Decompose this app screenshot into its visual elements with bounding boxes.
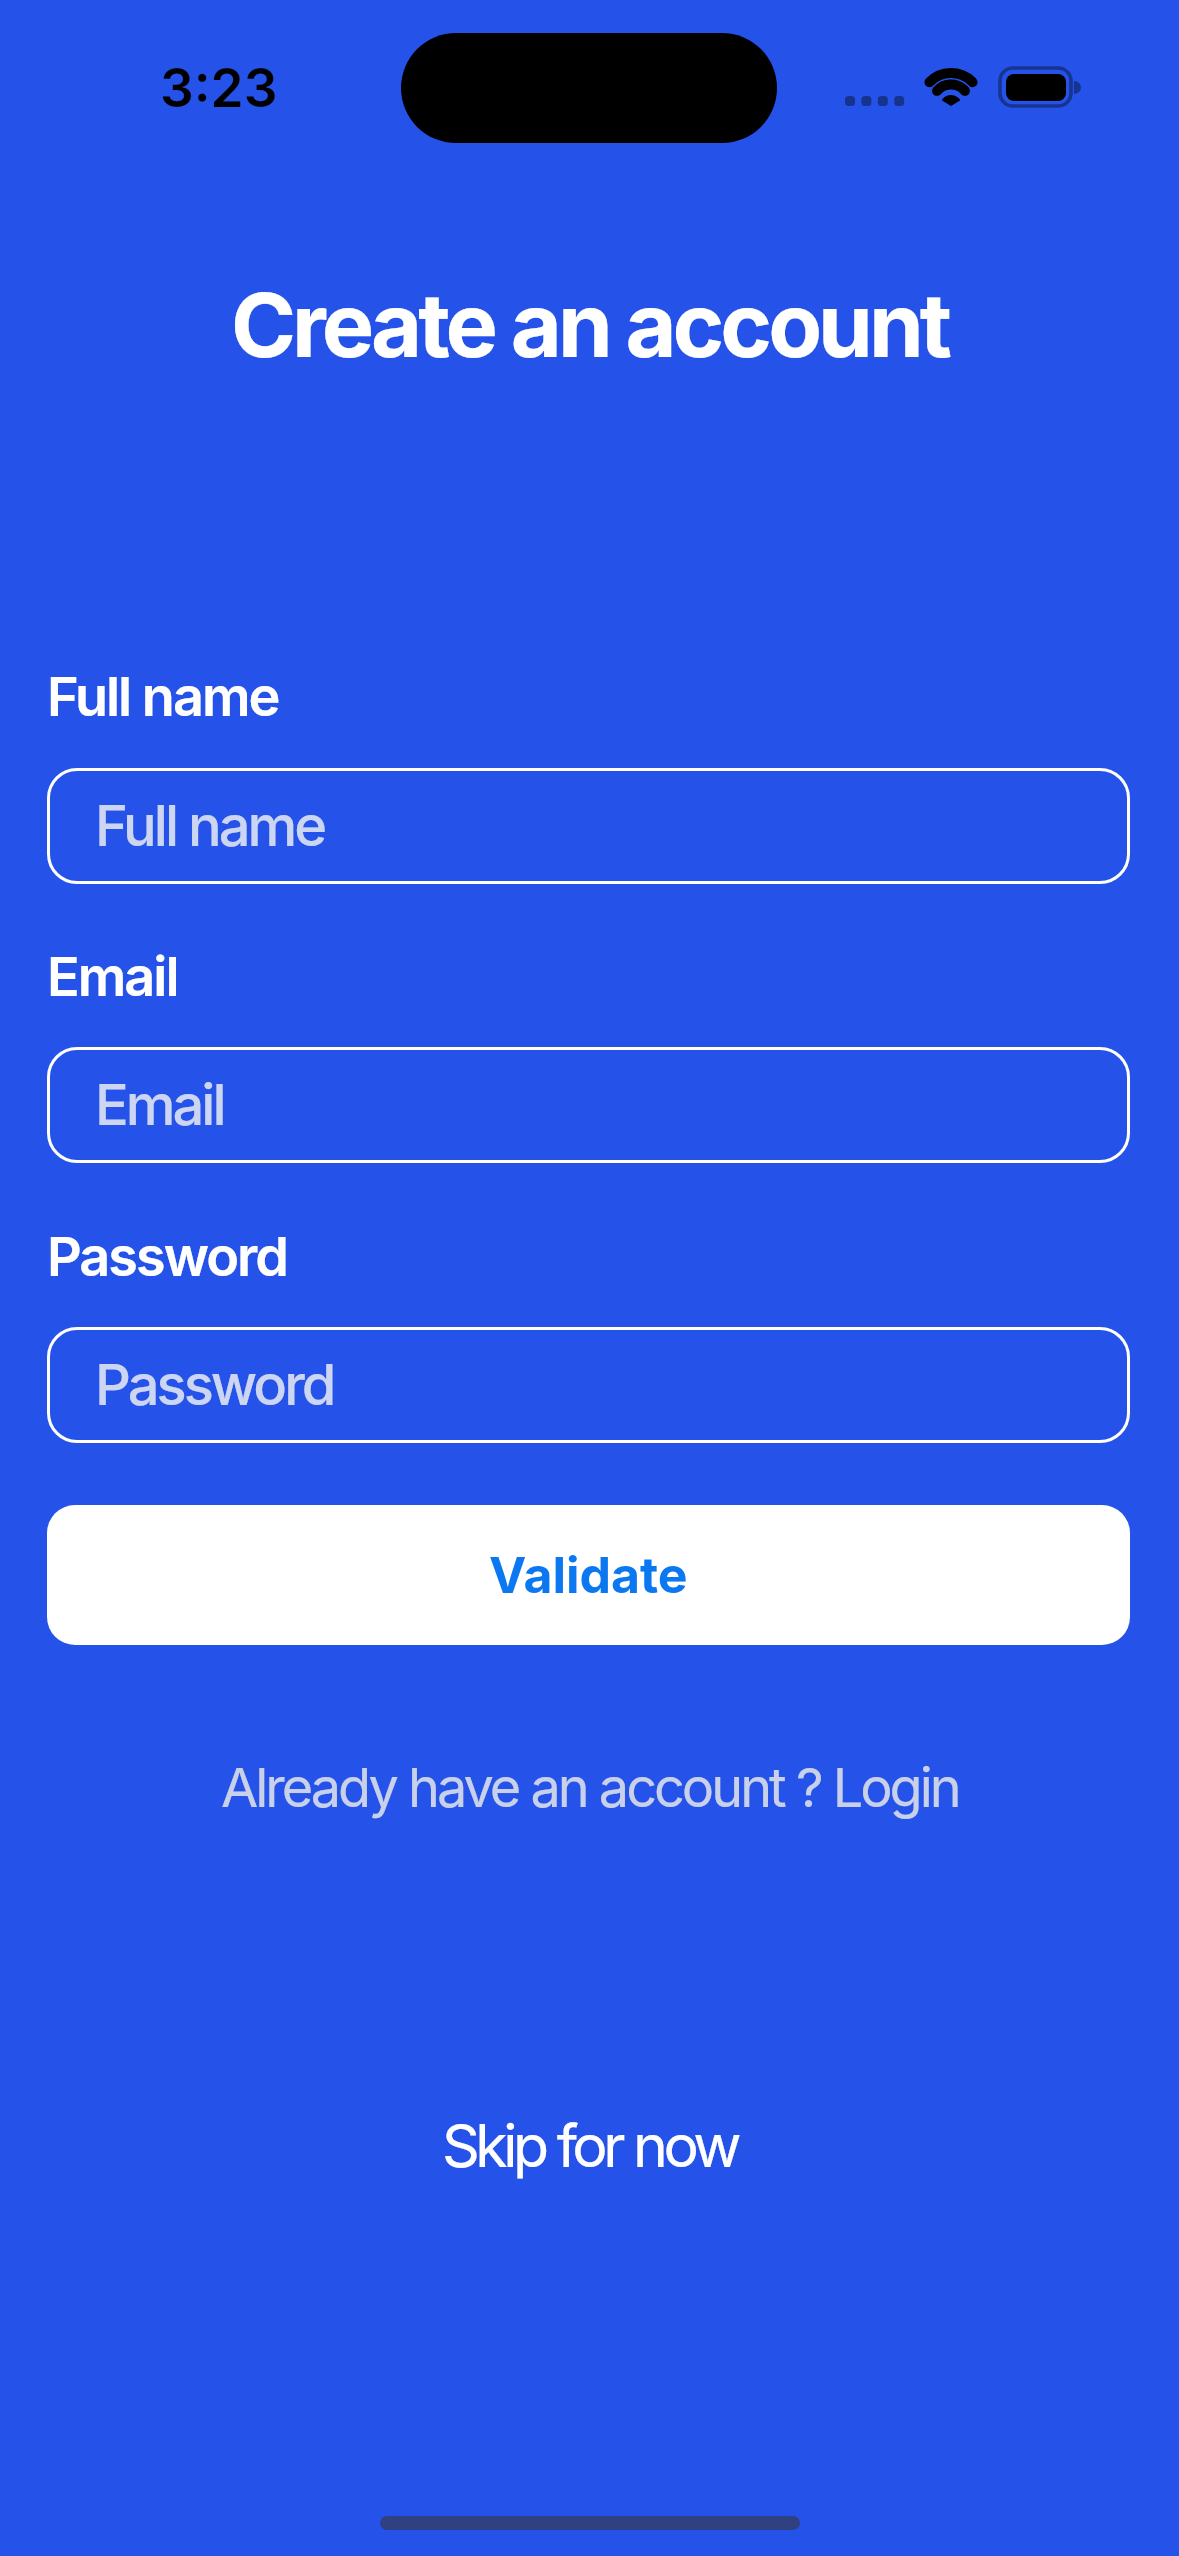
staticText: Full name [47, 664, 279, 729]
staticText: Full name [95, 792, 325, 860]
staticText: Email [95, 1071, 224, 1139]
button[interactable]: Already have an account ? Login [221, 1755, 959, 1820]
button[interactable]: Email [47, 1047, 1130, 1163]
button[interactable]: Full name [47, 768, 1130, 884]
staticText: Email [47, 944, 178, 1009]
staticText: Password [47, 1224, 288, 1289]
staticText: Password [95, 1351, 334, 1419]
staticText: 3:23 [160, 56, 278, 120]
staticText: Create an account [231, 272, 948, 378]
button[interactable]: Skip for now [442, 2110, 737, 2181]
button[interactable]: Validate [47, 1505, 1130, 1645]
staticText: Validate [489, 1545, 688, 1605]
button[interactable]: Password [47, 1327, 1130, 1443]
